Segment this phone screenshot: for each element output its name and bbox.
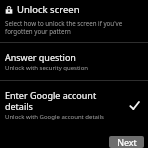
staticText: Unlock with Google account details — [5, 113, 104, 121]
staticText: Next — [117, 136, 137, 148]
other: Lock — [5, 6, 13, 14]
staticText: Answer question — [5, 51, 76, 63]
button[interactable]: Next — [109, 136, 144, 148]
button[interactable]: Answer question — [0, 45, 148, 78]
staticText: Select how to unlock the screen if you'v… — [5, 19, 143, 35]
staticText: Enter Google account details — [5, 89, 125, 112]
staticText: Unlock screen — [17, 3, 80, 16]
other: Selected — [129, 100, 140, 111]
button[interactable]: Enter Google account details — [0, 83, 148, 127]
staticText: Unlock with security question — [5, 64, 88, 72]
